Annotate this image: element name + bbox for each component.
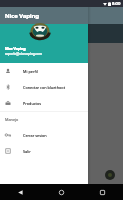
- staticText: Conectar con bluethoot: [23, 85, 66, 90]
- staticText: Nice Vaping: [5, 12, 40, 20]
- staticText: Manejo: [5, 117, 19, 122]
- staticText: Nice Vaping: [5, 46, 26, 51]
- staticText: Productos: [23, 101, 42, 106]
- staticText: soporte@nicevaping.com: [5, 52, 42, 56]
- button[interactable]: Mi perfil: [0, 63, 88, 79]
- button[interactable]: Cerrar sesion: [0, 127, 88, 143]
- button[interactable]: Back: [0, 184, 41, 200]
- staticText: Salir: [23, 149, 31, 154]
- staticText: soporte@nicevaping.com: [5, 52, 42, 56]
- staticText: Nice Vaping: [5, 12, 40, 20]
- staticText: Mi perfil: [23, 69, 38, 74]
- staticText: Conectar con bluethoot: [23, 85, 66, 90]
- button[interactable]: Recents: [82, 184, 123, 200]
- staticText: Productos: [23, 101, 42, 106]
- staticText: 8:00: [112, 1, 121, 7]
- staticText: Nice Vaping: [5, 46, 26, 51]
- button[interactable]: Conectar con bluethoot: [0, 79, 88, 95]
- staticText: Cerrar sesion: [23, 133, 47, 138]
- button[interactable]: Salir: [0, 143, 88, 159]
- staticText: 8:00: [112, 1, 121, 7]
- staticText: Nice Vaping: [5, 46, 26, 51]
- staticText: soporte@nicevaping.com: [5, 52, 42, 56]
- staticText: Salir: [23, 149, 31, 154]
- staticText: Cerrar sesion: [23, 133, 47, 138]
- button[interactable]: Productos: [0, 95, 88, 111]
- staticText: Mi perfil: [23, 69, 38, 74]
- staticText: Manejo: [5, 117, 19, 122]
- button[interactable]: Home: [41, 184, 82, 200]
- button[interactable]: Add: [105, 170, 115, 180]
